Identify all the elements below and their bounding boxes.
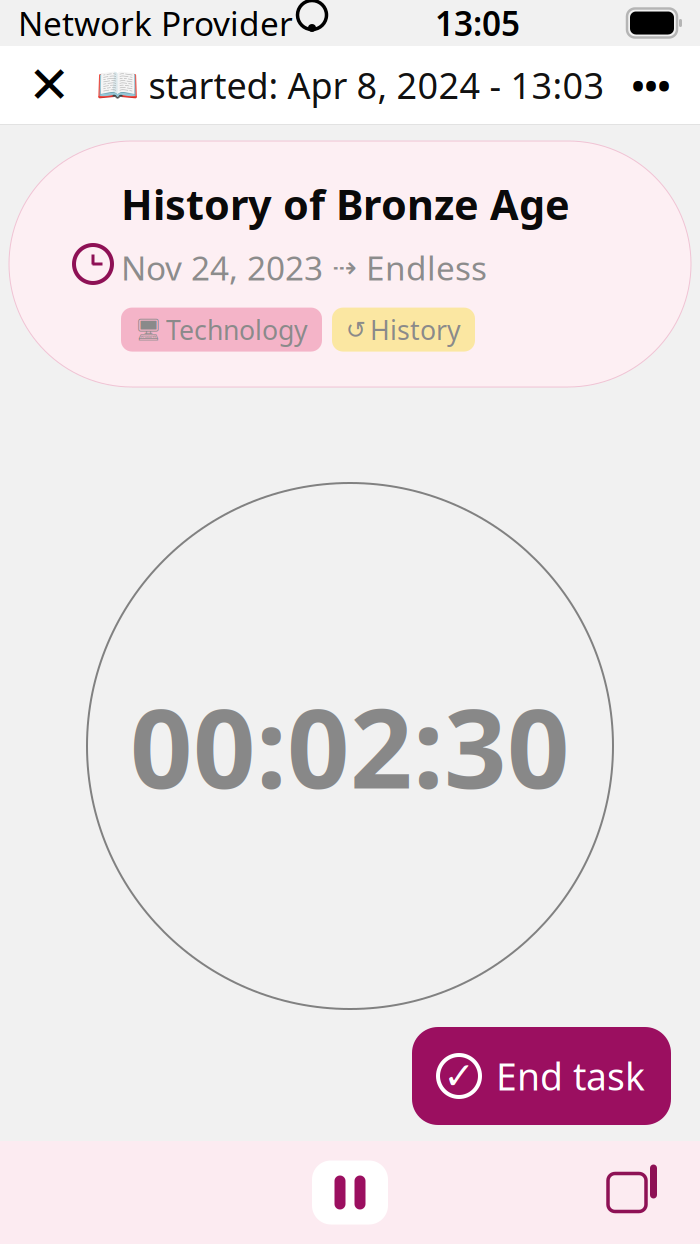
- staticText: ⇢: [332, 251, 357, 284]
- staticText: 13:05: [435, 1, 520, 45]
- staticText: [293, 14, 296, 32]
- button[interactable]: Close: [14, 50, 84, 120]
- staticText: 00:02:30: [130, 673, 570, 819]
- staticText: •••: [631, 62, 670, 108]
- button[interactable]: History of Bronze Age: [9, 141, 691, 387]
- staticText: End task: [496, 1051, 645, 1101]
- staticText: 📖: [95, 65, 138, 105]
- button[interactable]: More options: [616, 50, 686, 120]
- staticText: 🖥: [135, 317, 162, 342]
- button[interactable]: Edit: [592, 1157, 662, 1227]
- staticText: Endless: [366, 245, 487, 290]
- staticText: ✕: [28, 56, 70, 114]
- button[interactable]: ✓: [412, 1027, 671, 1125]
- staticText: ✓: [443, 1055, 474, 1097]
- staticText: started: Apr 8, 2024 - 13:03: [148, 61, 604, 109]
- staticText: History: [370, 312, 461, 347]
- staticText: Technology: [166, 312, 308, 347]
- staticText: Network Provider: [18, 1, 293, 45]
- staticText: Nov 24, 2023: [121, 245, 323, 290]
- staticText: History of Bronze Age: [121, 176, 570, 231]
- button[interactable]: Pause: [312, 1160, 388, 1224]
- staticText: ↺: [346, 316, 366, 343]
